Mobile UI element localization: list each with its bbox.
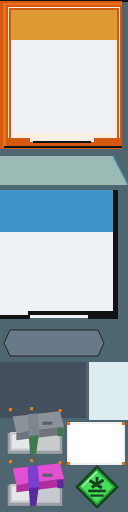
button[interactable]: Asset sheet preview (0, 0, 128, 512)
